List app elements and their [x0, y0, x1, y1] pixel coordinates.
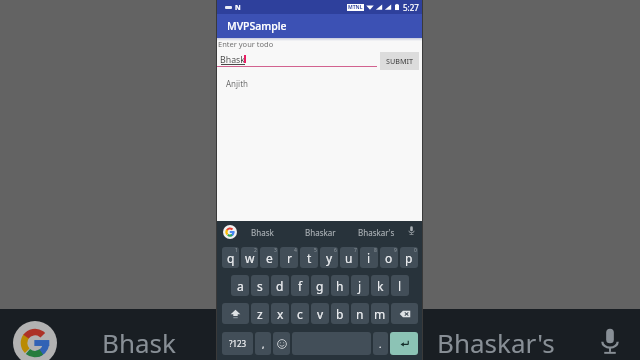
- staticText: 7: [354, 247, 357, 254]
- staticText: Bhask: [251, 227, 274, 238]
- staticText: p: [405, 250, 413, 266]
- staticText: 8: [374, 247, 377, 254]
- button[interactable]: Emoji: [273, 332, 290, 355]
- button[interactable]: Symbols: [222, 332, 253, 355]
- staticText: o: [385, 250, 393, 266]
- button[interactable]: Enter: [390, 332, 418, 355]
- staticText: a: [237, 278, 244, 294]
- button[interactable]: 0: [400, 247, 418, 268]
- staticText: 4: [294, 247, 297, 254]
- staticText: 3: [274, 247, 277, 254]
- button[interactable]: h: [331, 275, 349, 296]
- staticText: k: [377, 278, 384, 294]
- staticText: f: [298, 278, 303, 294]
- button[interactable]: 8: [360, 247, 378, 268]
- button[interactable]: f: [291, 275, 309, 296]
- staticText: MVPSample: [227, 19, 287, 33]
- staticText: d: [276, 278, 284, 294]
- button[interactable]: j: [351, 275, 369, 296]
- button[interactable]: k: [371, 275, 389, 296]
- staticText: ?123: [229, 338, 247, 349]
- button[interactable]: z: [251, 303, 269, 324]
- staticText: v: [317, 306, 324, 322]
- staticText: i: [367, 250, 371, 266]
- other: Voice input: [594, 325, 626, 357]
- staticText: Bhaskar's: [437, 325, 555, 360]
- staticText: y: [326, 250, 333, 266]
- staticText: .: [379, 338, 382, 350]
- staticText: n: [356, 306, 364, 322]
- staticText: w: [245, 250, 255, 266]
- staticText: SUBMIT: [386, 56, 414, 66]
- button[interactable]: Period: [373, 332, 388, 355]
- staticText: ,: [262, 338, 265, 350]
- staticText: 5:27: [403, 2, 419, 13]
- button[interactable]: Anjith: [217, 76, 422, 90]
- staticText: Enter your todo: [218, 39, 274, 49]
- button[interactable]: s: [251, 275, 269, 296]
- button[interactable]: 2: [241, 247, 258, 268]
- staticText: Bhaskar: [305, 227, 336, 238]
- button[interactable]: d: [271, 275, 289, 296]
- button[interactable]: 3: [260, 247, 278, 268]
- button[interactable]: c: [291, 303, 309, 324]
- button[interactable]: 5: [300, 247, 318, 268]
- staticText: Bhask: [220, 54, 246, 66]
- staticText: Anjith: [226, 78, 249, 89]
- staticText: Bhaskar's: [358, 227, 395, 238]
- staticText: r: [287, 250, 292, 266]
- button[interactable]: n: [351, 303, 369, 324]
- button[interactable]: Shift: [222, 303, 249, 324]
- staticText: b: [336, 306, 344, 322]
- button[interactable]: a: [231, 275, 249, 296]
- staticText: 9: [394, 247, 397, 254]
- staticText: h: [336, 278, 344, 294]
- button[interactable]: x: [271, 303, 289, 324]
- staticText: q: [227, 250, 235, 266]
- staticText: 2: [254, 247, 257, 254]
- staticText: 0: [414, 247, 417, 254]
- staticText: e: [266, 250, 273, 266]
- staticText: MTNL: [348, 4, 363, 11]
- button[interactable]: g: [311, 275, 329, 296]
- button[interactable]: l: [391, 275, 409, 296]
- staticText: N: [235, 3, 241, 13]
- staticText: c: [297, 306, 303, 322]
- button[interactable]: 9: [380, 247, 398, 268]
- button[interactable]: MVPSample: [217, 14, 422, 38]
- staticText: m: [374, 306, 386, 322]
- button[interactable]: SUBMIT: [380, 52, 419, 70]
- staticText: s: [257, 278, 263, 294]
- button[interactable]: 1: [222, 247, 239, 268]
- button[interactable]: v: [311, 303, 329, 324]
- button[interactable]: Backspace: [391, 303, 418, 324]
- button[interactable]: Comma: [255, 332, 271, 355]
- staticText: 5: [314, 247, 317, 254]
- button[interactable]: 4: [280, 247, 298, 268]
- staticText: l: [398, 278, 402, 294]
- button[interactable]: 7: [340, 247, 358, 268]
- button[interactable]: b: [331, 303, 349, 324]
- staticText: t: [307, 250, 312, 266]
- staticText: 6: [334, 247, 337, 254]
- staticText: Bhask: [102, 325, 176, 360]
- staticText: g: [316, 278, 324, 294]
- staticText: u: [345, 250, 353, 266]
- button[interactable]: m: [371, 303, 389, 324]
- other: Voice input: [406, 225, 417, 236]
- staticText: 1: [235, 247, 238, 254]
- staticText: j: [358, 278, 362, 294]
- staticText: z: [257, 306, 263, 322]
- staticText: x: [277, 306, 284, 322]
- button[interactable]: 6: [320, 247, 338, 268]
